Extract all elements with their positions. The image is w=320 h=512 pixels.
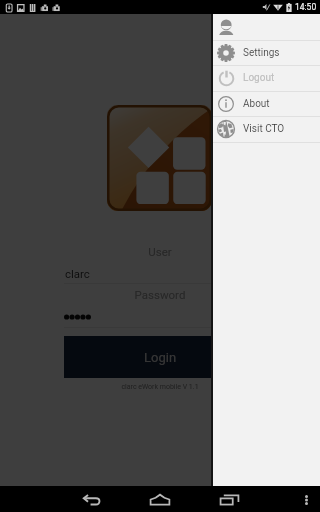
staticText: About [243, 98, 270, 110]
button[interactable]: Settings [213, 40, 320, 66]
button[interactable]: Account [213, 14, 320, 40]
staticText: Visit CTO [243, 123, 285, 135]
button[interactable]: More options [296, 486, 320, 512]
staticText: Settings [243, 47, 280, 59]
staticText: clarc [65, 267, 90, 280]
button[interactable]: Login [64, 336, 256, 378]
button[interactable]: Back [66, 486, 118, 512]
staticText: Logout [243, 72, 275, 84]
staticText: Password [64, 288, 256, 301]
staticText: 14:50 [295, 2, 317, 12]
button[interactable]: About [213, 91, 320, 117]
staticText: User [64, 245, 256, 258]
button[interactable]: Visit CTO [213, 116, 320, 142]
button[interactable]: Recent apps [203, 486, 255, 512]
staticText: Login [144, 350, 177, 365]
staticText: clarc eWork mobile V 1.1 [64, 383, 256, 391]
button[interactable]: Home [134, 486, 186, 512]
button[interactable]: Logout [213, 65, 320, 91]
